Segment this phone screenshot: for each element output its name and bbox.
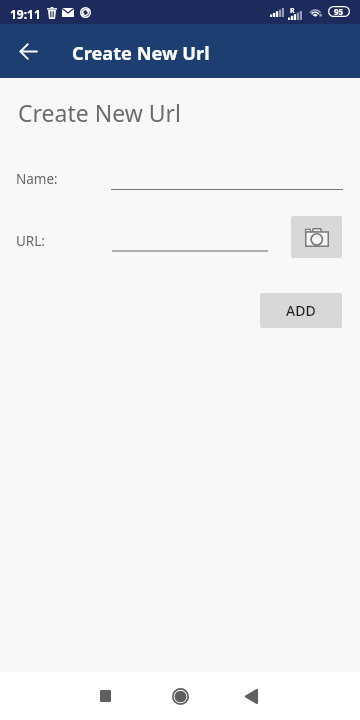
- staticText: URL:: [16, 232, 45, 250]
- button[interactable]: Take photo: [291, 216, 342, 258]
- staticText: ADD: [286, 301, 316, 320]
- button[interactable]: ADD: [260, 293, 342, 328]
- staticText: Name:: [16, 170, 58, 188]
- staticText: 95: [334, 6, 344, 17]
- staticText: 19:11: [10, 6, 41, 22]
- button[interactable]: Home: [156, 672, 204, 720]
- button[interactable]: Back: [227, 672, 275, 720]
- button[interactable]: Back: [12, 35, 44, 67]
- button[interactable]: Recent apps: [81, 672, 129, 720]
- staticText: Create New Url: [18, 97, 182, 128]
- staticText: R: [290, 6, 295, 16]
- staticText: Create New Url: [72, 41, 210, 66]
